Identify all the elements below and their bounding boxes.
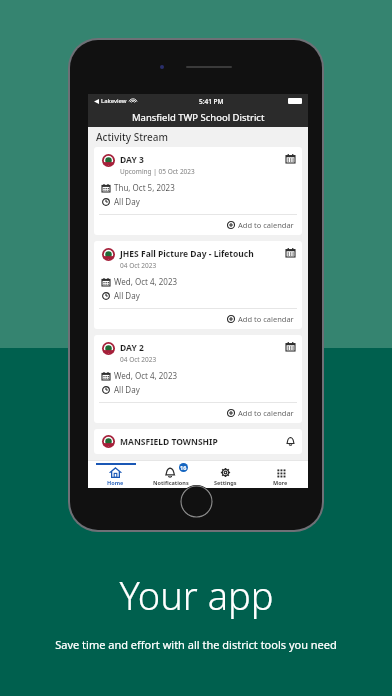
staticText: MANSFIELD TOWNSHIP	[120, 436, 286, 448]
button[interactable]: Add to calendar	[94, 215, 302, 235]
staticText: JHES Fall Picture Day - Lifetouch	[120, 248, 254, 260]
button[interactable]: Settings	[198, 461, 253, 488]
staticText: Lakeview	[101, 97, 127, 105]
staticText: Your app	[119, 569, 274, 621]
staticText: Thu, Oct 5, 2023	[114, 182, 175, 193]
other: Home button	[180, 485, 213, 518]
button[interactable]: Add to calendar	[94, 403, 302, 423]
staticText: All Day	[114, 290, 140, 301]
staticText: DAY 3	[120, 154, 144, 166]
button[interactable]: DAY 3	[94, 147, 302, 235]
staticText: DAY 2	[120, 342, 144, 354]
button[interactable]: Notifications	[143, 461, 198, 488]
button[interactable]: MANSFIELD TOWNSHIP	[94, 429, 302, 454]
staticText: Add to calendar	[238, 220, 294, 230]
staticText: 04 Oct 2023	[120, 261, 157, 270]
staticText: All Day	[114, 384, 140, 395]
staticText: Add to calendar	[238, 408, 294, 418]
staticText: Settings	[214, 479, 237, 486]
button[interactable]: More	[253, 461, 308, 488]
staticText: Add to calendar	[238, 314, 294, 324]
staticText: Save time and effort with all the distri…	[55, 637, 337, 652]
staticText: 5:41 PM	[199, 97, 224, 106]
staticText: Wed, Oct 4, 2023	[114, 370, 178, 381]
staticText: All Day	[114, 196, 140, 207]
staticText: Notifications	[153, 479, 189, 486]
staticText: 04 Oct 2023	[120, 355, 157, 364]
staticText: Upcoming | 05 Oct 2023	[120, 167, 195, 176]
button[interactable]: JHES Fall Picture Day - Lifetouch	[94, 241, 302, 329]
button[interactable]: DAY 2	[94, 335, 302, 423]
staticText: Activity Stream	[96, 130, 168, 144]
staticText: Mansfield TWP School District	[132, 111, 265, 124]
staticText: More	[273, 479, 288, 486]
button[interactable]: Add to calendar	[94, 309, 302, 329]
staticText: 16	[180, 464, 187, 471]
button[interactable]: Home	[88, 461, 143, 488]
staticText: Home	[107, 479, 124, 486]
staticText: Wed, Oct 4, 2023	[114, 276, 178, 287]
